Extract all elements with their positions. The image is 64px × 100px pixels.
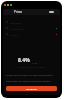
staticText: Lorem ipsum dolor sit amet consectetur [6, 73, 53, 76]
staticText: Connections [10, 27, 25, 30]
button[interactable]: Overview [6, 19, 57, 25]
staticText: 8.4% [18, 57, 30, 64]
staticText: compared to last week [6, 65, 57, 68]
button[interactable]: Connections [6, 25, 57, 31]
button[interactable]: Activity [6, 31, 57, 37]
staticText: Activity [10, 33, 19, 36]
staticText: Overview [10, 21, 21, 24]
staticText: Prism [14, 10, 23, 14]
button[interactable]: Menu [49, 11, 54, 13]
staticText: Continue [26, 87, 37, 90]
staticText: adipiscing elit sed do eiusmod tempor [6, 79, 51, 82]
staticText: +1.2 [32, 61, 37, 64]
button[interactable]: Continue [6, 86, 57, 91]
